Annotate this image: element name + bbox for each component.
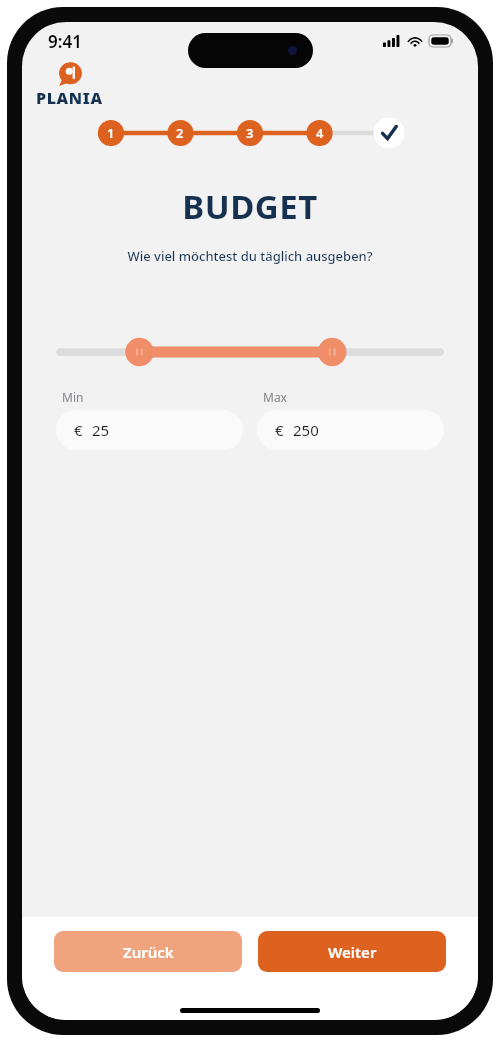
staticText: Wie viel möchtest du täglich ausgeben? xyxy=(22,247,478,265)
staticText: Weiter xyxy=(328,942,377,962)
staticText: 2 xyxy=(176,124,184,142)
button[interactable]: € xyxy=(56,410,243,450)
staticText: 25 xyxy=(92,420,110,440)
button[interactable]: € xyxy=(257,410,444,450)
staticText: € xyxy=(275,420,284,440)
staticText: PLANIA xyxy=(36,87,103,109)
button[interactable]: Budget range slider xyxy=(22,327,478,377)
button[interactable]: Weiter xyxy=(258,931,446,972)
staticText: 1 xyxy=(107,124,115,142)
button[interactable]: Zurück xyxy=(54,931,242,972)
staticText: 250 xyxy=(293,420,319,440)
staticText: € xyxy=(74,420,83,440)
staticText: 9:41 xyxy=(48,30,82,53)
staticText: Zurück xyxy=(123,942,174,962)
staticText: Max xyxy=(263,389,287,405)
staticText: 3 xyxy=(246,124,254,142)
staticText: 4 xyxy=(316,124,324,142)
staticText: Min xyxy=(62,389,84,405)
staticText: BUDGET xyxy=(22,184,478,229)
